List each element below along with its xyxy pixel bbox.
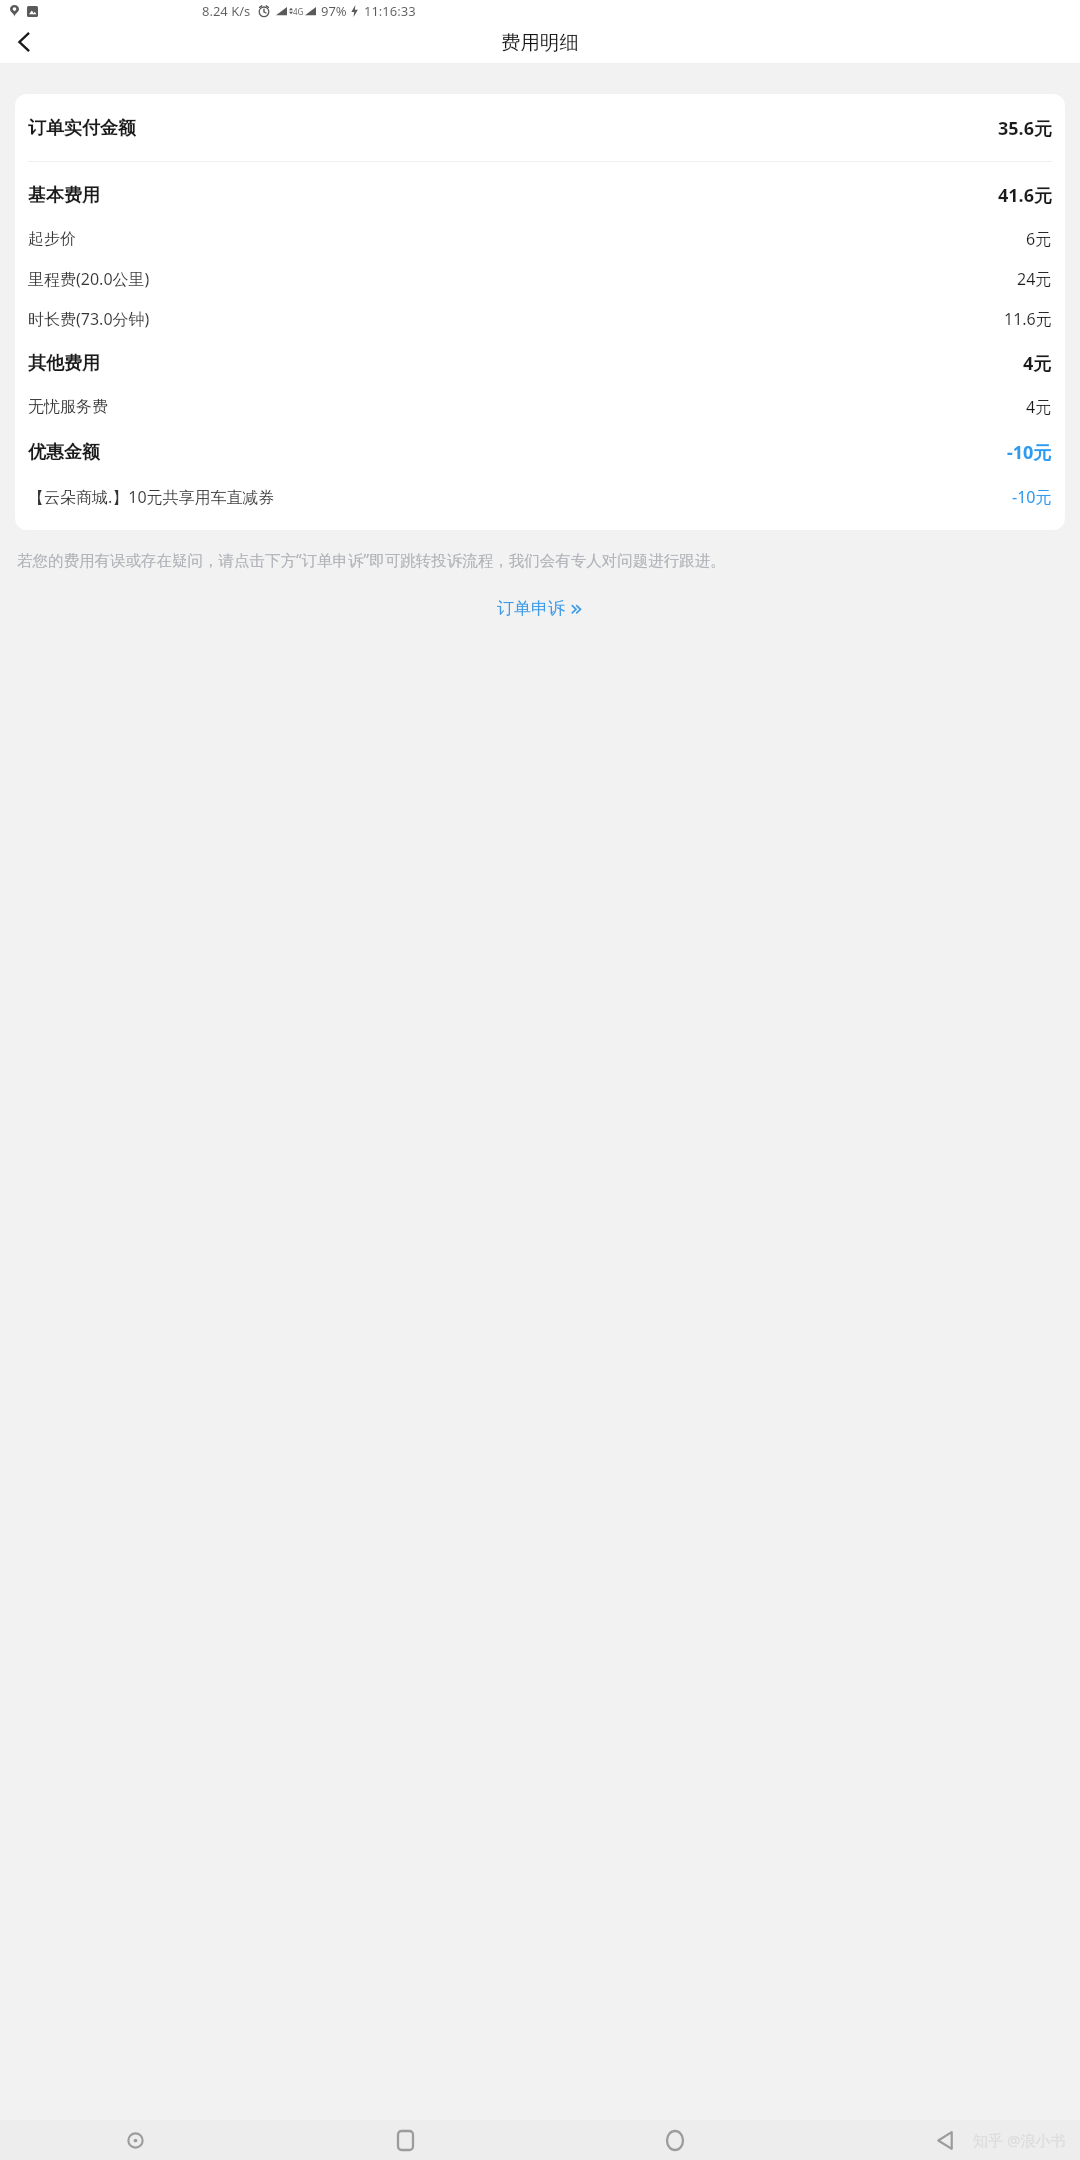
staticText: 4元 <box>1023 351 1052 376</box>
button[interactable]: 【云朵商城.】10元共享用车直减券 <box>28 486 1052 508</box>
staticText: 若您的费用有误或存在疑问，请点击下方“订单申诉”即可跳转投诉流程，我们会有专人对… <box>17 549 1063 570</box>
staticText: 订单申诉 <box>497 598 565 619</box>
staticText: 24元 <box>1017 268 1052 290</box>
staticText: -10元 <box>1007 440 1052 465</box>
staticText: 费用明细 <box>501 30 579 55</box>
button[interactable]: Back <box>810 2120 1080 2160</box>
button[interactable]: 订单实付金额 <box>28 116 1052 141</box>
staticText: 4G <box>293 6 304 17</box>
staticText: 起步价 <box>28 229 76 249</box>
staticText: 97% <box>321 2 347 20</box>
staticText: 11.6元 <box>1004 308 1052 330</box>
button[interactable]: 起步价 <box>28 228 1052 250</box>
staticText: 无忧服务费 <box>28 397 108 417</box>
staticText: -10元 <box>1012 486 1052 508</box>
button[interactable]: Back <box>0 21 48 63</box>
staticText: 里程费(20.0公里) <box>28 268 150 290</box>
staticText: 订单实付金额 <box>28 117 136 140</box>
button[interactable]: Recents <box>270 2120 540 2160</box>
staticText: 4元 <box>1026 396 1052 418</box>
staticText: 基本费用 <box>28 184 100 207</box>
staticText: 其他费用 <box>28 352 100 375</box>
button[interactable]: 无忧服务费 <box>28 396 1052 418</box>
button[interactable]: Home <box>540 2120 810 2160</box>
button[interactable]: 优惠金额 <box>28 440 1052 465</box>
button[interactable]: 里程费(20.0公里) <box>28 268 1052 290</box>
button[interactable]: 时长费(73.0分钟) <box>28 308 1052 330</box>
button[interactable]: 其他费用 <box>28 351 1052 376</box>
staticText: 35.6元 <box>998 116 1052 141</box>
button[interactable]: 订单申诉 <box>481 592 600 625</box>
staticText: 【云朵商城.】10元共享用车直减券 <box>28 486 275 508</box>
staticText: 41.6元 <box>998 183 1052 208</box>
staticText: 优惠金额 <box>28 441 100 464</box>
staticText: 知乎 @浪小书 <box>973 2130 1066 2150</box>
staticText: 时长费(73.0分钟) <box>28 308 150 330</box>
staticText: 6元 <box>1026 228 1052 250</box>
staticText: 11:16:33 <box>364 2 416 20</box>
button[interactable]: Assistant <box>0 2120 270 2160</box>
button[interactable]: 基本费用 <box>28 183 1052 208</box>
staticText: 8.24 K/s <box>202 2 251 20</box>
